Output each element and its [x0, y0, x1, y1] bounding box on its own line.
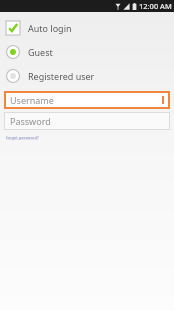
staticText: 12:00 AM — [139, 1, 172, 11]
button[interactable]: Username — [4, 91, 170, 109]
staticText: Guest — [28, 46, 53, 58]
button[interactable]: Auto login — [0, 16, 174, 40]
button[interactable]: Guest — [0, 40, 174, 64]
button[interactable]: Password — [4, 112, 170, 130]
staticText: Username — [10, 94, 54, 106]
button[interactable]: Registered user — [0, 64, 174, 88]
staticText: Registered user — [28, 70, 95, 82]
staticText: Password — [10, 115, 51, 127]
button[interactable]: forgot password? — [6, 135, 39, 140]
staticText: Auto login — [28, 22, 72, 34]
